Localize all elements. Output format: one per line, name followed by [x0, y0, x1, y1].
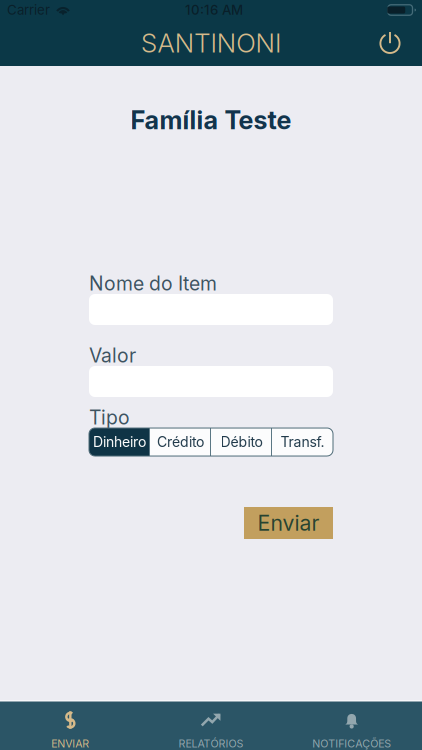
button[interactable]: Sair [374, 21, 422, 65]
button[interactable]: Dinheiro [89, 428, 150, 456]
staticText: Nome do Item [89, 272, 217, 295]
staticText: Crédito [157, 433, 204, 450]
staticText: Dinheiro [93, 433, 146, 450]
staticText: Transf. [280, 433, 324, 450]
staticText: SANTINONI [141, 27, 281, 59]
staticText: Família Teste [130, 105, 291, 135]
staticText: Carrier [7, 2, 50, 18]
button[interactable]: Enviar [244, 507, 333, 539]
staticText: Tipo [89, 406, 130, 429]
staticText: NOTIFICAÇÕES [312, 737, 391, 750]
staticText: RELATÓRIOS [178, 737, 243, 750]
button[interactable]: NOTIFICAÇÕES [281, 700, 422, 750]
staticText: ENVIAR [51, 737, 89, 750]
button[interactable]: Débito [211, 428, 272, 456]
staticText: Débito [220, 433, 262, 450]
staticText: Enviar [257, 510, 319, 536]
button[interactable]: Transf. [272, 428, 333, 456]
button[interactable]: Crédito [150, 428, 211, 456]
staticText: Valor [89, 344, 136, 367]
button[interactable]: RELATÓRIOS [141, 700, 281, 750]
staticText: 10:16 AM [185, 2, 243, 18]
button[interactable]: ENVIAR [0, 700, 141, 750]
